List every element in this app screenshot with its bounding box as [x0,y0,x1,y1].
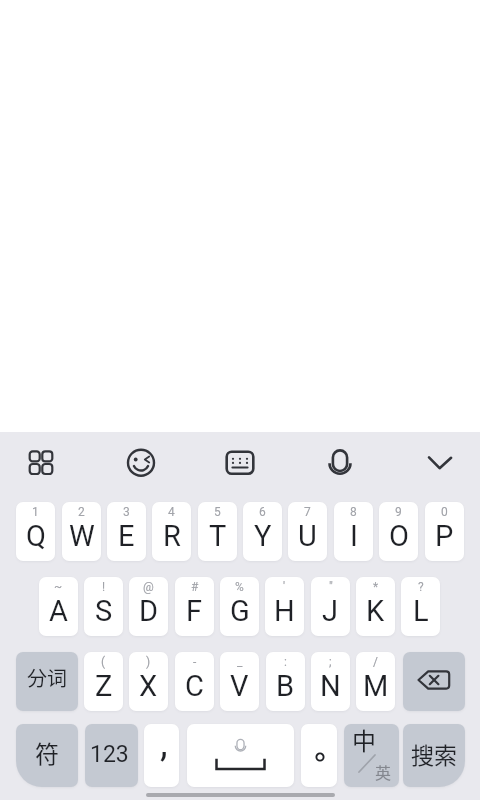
staticText: P [435,519,454,553]
button[interactable]: ) [129,652,168,711]
button[interactable]: / [356,652,395,711]
staticText: _ [237,655,243,669]
staticText: 7 [304,505,311,519]
button[interactable]: ' [265,577,304,636]
button[interactable]: ? [401,577,440,636]
button[interactable]: 5 [198,502,237,561]
button[interactable]: ~ [39,577,78,636]
staticText: B [276,669,295,703]
button[interactable] [111,433,171,493]
button[interactable] [11,433,71,493]
staticText: Z [95,669,113,703]
staticText: 英 [375,760,392,783]
staticText: - [193,655,197,669]
staticText: A [49,594,68,628]
staticText: E [118,519,135,553]
staticText: 中 [352,722,376,757]
button[interactable]: 中 [344,724,399,787]
button[interactable]: ; [311,652,350,711]
button[interactable] [187,724,294,787]
button[interactable]: 1 [16,502,55,561]
button[interactable]: 3 [107,502,146,561]
staticText: % [235,580,244,594]
button[interactable] [301,724,337,787]
button[interactable] [210,433,270,493]
button[interactable]: 分词 [16,652,78,711]
staticText: 符 [35,735,59,770]
staticText: ( [101,655,106,669]
staticText: # [191,580,199,594]
staticText: N [320,669,341,703]
button[interactable]: 123 [85,724,138,787]
staticText: Y [254,519,272,553]
button[interactable]: ( [84,652,123,711]
staticText: / [373,655,378,669]
staticText: 9 [395,505,402,519]
button[interactable]: 7 [288,502,327,561]
button[interactable]: # [175,577,214,636]
button[interactable] [310,433,370,493]
staticText: ~ [54,580,63,594]
button[interactable]: , [144,724,179,787]
button[interactable] [403,652,465,711]
staticText: X [139,669,158,703]
staticText: * [373,580,379,594]
button[interactable]: " [311,577,350,636]
button[interactable]: - [175,652,214,711]
staticText: 1 [32,505,39,519]
staticText: , [160,720,168,766]
button[interactable]: 8 [334,502,373,561]
button[interactable]: 2 [62,502,101,561]
staticText: T [209,519,227,553]
staticText: 123 [90,741,129,768]
staticText: G [230,594,250,628]
staticText: L [413,594,429,628]
staticText: 搜索 [411,737,457,770]
button[interactable]: 9 [379,502,418,561]
staticText: W [69,519,95,553]
staticText: 3 [123,505,130,519]
staticText: F [186,594,203,628]
staticText: 5 [214,505,221,519]
staticText: ? [418,580,424,594]
button[interactable]: @ [129,577,168,636]
staticText: M [363,669,389,703]
staticText: 4 [168,505,175,519]
staticText: O [389,519,409,553]
button[interactable] [410,433,470,493]
staticText: : [284,655,287,669]
staticText: 2 [78,505,85,519]
button[interactable]: 6 [243,502,282,561]
button[interactable]: 符 [16,724,78,787]
staticText: J [322,594,339,628]
staticText: ) [146,655,151,669]
button[interactable]: % [220,577,259,636]
staticText: D [139,594,159,628]
staticText: 0 [441,505,448,519]
staticText: 8 [350,505,357,519]
staticText: U [298,519,317,553]
button[interactable]: 0 [425,502,464,561]
staticText: S [95,594,113,628]
staticText: ; [329,655,332,669]
button[interactable]: _ [220,652,259,711]
button[interactable]: 4 [152,502,191,561]
staticText: R [163,519,181,553]
staticText: V [230,669,249,703]
staticText: 6 [259,505,266,519]
staticText: Q [26,519,46,553]
staticText: ' [283,580,286,594]
button[interactable]: ! [84,577,123,636]
button[interactable]: : [266,652,305,711]
button[interactable]: * [356,577,395,636]
staticText: C [185,669,204,703]
button[interactable]: 搜索 [403,724,465,787]
staticText: 分词 [27,663,67,692]
staticText: I [350,519,358,553]
staticText: " [329,580,333,594]
staticText: K [366,594,385,628]
staticText: ! [102,580,106,594]
staticText: H [274,594,295,628]
staticText: @ [143,580,154,594]
